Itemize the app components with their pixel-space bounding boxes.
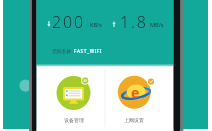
staticText: KB/s — [90, 21, 102, 29]
staticText: 上网设置 — [114, 117, 154, 125]
staticText: e — [131, 83, 140, 102]
staticText: FAST_WIFI — [74, 48, 103, 55]
staticText: 1.8 — [120, 11, 148, 33]
button[interactable]: 设备管理 — [36, 66, 105, 128]
staticText: 设备管理 — [54, 117, 94, 125]
staticText: 无线名称： — [52, 48, 76, 54]
button[interactable]: 上网设置 — [106, 66, 173, 128]
staticText: MB/s — [150, 21, 164, 29]
staticText: 200 — [52, 11, 86, 33]
